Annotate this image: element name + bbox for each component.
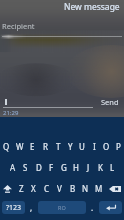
staticText: F bbox=[49, 162, 54, 173]
staticText: I bbox=[93, 141, 96, 152]
button[interactable]: V bbox=[53, 178, 66, 199]
staticText: , bbox=[30, 202, 33, 213]
button[interactable]: W bbox=[13, 136, 26, 157]
staticText: Recipient bbox=[2, 21, 35, 31]
button[interactable]: B bbox=[66, 178, 79, 199]
button[interactable]: . bbox=[86, 201, 99, 214]
button[interactable]: P bbox=[112, 136, 124, 157]
staticText: E bbox=[30, 141, 35, 152]
staticText: S bbox=[23, 162, 28, 173]
staticText: P bbox=[116, 141, 121, 152]
button[interactable]: M bbox=[92, 178, 105, 199]
button[interactable]: J bbox=[82, 157, 94, 178]
staticText: L bbox=[110, 162, 115, 173]
button[interactable]: O bbox=[100, 136, 112, 157]
staticText: C bbox=[44, 183, 50, 194]
staticText: 21:29 bbox=[3, 109, 19, 117]
button[interactable]: G bbox=[58, 157, 70, 178]
button[interactable]: Space bbox=[38, 201, 86, 214]
staticText: N bbox=[82, 183, 89, 194]
staticText: ?123 bbox=[6, 203, 22, 213]
staticText: Q bbox=[3, 141, 10, 152]
button[interactable]: K bbox=[94, 157, 106, 178]
button[interactable]: ?123 bbox=[2, 201, 25, 214]
button[interactable]: Enter bbox=[99, 201, 122, 214]
staticText: Y bbox=[68, 141, 73, 152]
button[interactable]: Send bbox=[93, 93, 122, 117]
staticText: O bbox=[103, 141, 110, 152]
staticText: J bbox=[87, 162, 90, 173]
button[interactable]: U bbox=[76, 136, 88, 157]
staticText: U bbox=[79, 141, 85, 152]
button[interactable]: Backspace bbox=[105, 178, 124, 199]
staticText: A bbox=[10, 162, 16, 173]
button[interactable]: E bbox=[26, 136, 39, 157]
button[interactable]: I bbox=[88, 136, 100, 157]
button[interactable]: , bbox=[25, 201, 38, 214]
staticText: K bbox=[98, 162, 103, 173]
staticText: V bbox=[57, 183, 62, 194]
staticText: X bbox=[31, 183, 36, 194]
button[interactable]: C bbox=[40, 178, 53, 199]
staticText: Z bbox=[19, 183, 24, 194]
staticText: D bbox=[36, 162, 42, 173]
staticText: M bbox=[95, 183, 103, 194]
button[interactable]: F bbox=[45, 157, 58, 178]
button[interactable]: Shift bbox=[0, 178, 15, 199]
button[interactable]: D bbox=[32, 157, 45, 178]
staticText: Send bbox=[101, 97, 119, 107]
staticText: G bbox=[61, 162, 67, 173]
button[interactable]: R bbox=[39, 136, 52, 157]
staticText: . bbox=[91, 202, 94, 213]
button[interactable]: Q bbox=[0, 136, 13, 157]
button[interactable]: N bbox=[79, 178, 92, 199]
staticText: T bbox=[56, 141, 61, 152]
staticText: W bbox=[16, 141, 24, 152]
staticText: R bbox=[43, 141, 48, 152]
button[interactable]: S bbox=[19, 157, 32, 178]
button[interactable]: T bbox=[52, 136, 64, 157]
button[interactable]: A bbox=[6, 157, 19, 178]
staticText: RO bbox=[58, 204, 66, 211]
staticText: New message bbox=[64, 1, 120, 13]
button[interactable]: X bbox=[27, 178, 40, 199]
button[interactable]: Z bbox=[15, 178, 27, 199]
button[interactable]: Y bbox=[64, 136, 76, 157]
staticText: H bbox=[73, 162, 79, 173]
button[interactable]: L bbox=[106, 157, 118, 178]
button[interactable]: H bbox=[70, 157, 82, 178]
staticText: B bbox=[70, 183, 76, 194]
